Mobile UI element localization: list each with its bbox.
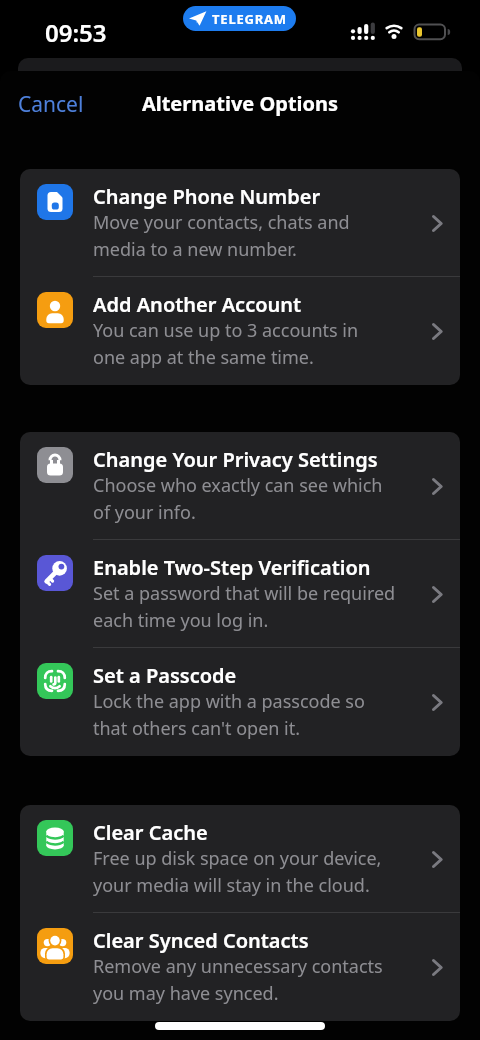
staticText: Add Another Account [93, 291, 302, 318]
button[interactable]: Enable Two-Step Verification [20, 540, 460, 648]
button[interactable]: Add Another Account [20, 277, 460, 385]
staticText: Set a Passcode [93, 662, 237, 689]
staticText: Alternative Options [0, 90, 480, 117]
button[interactable]: Change Your Privacy Settings [20, 432, 460, 540]
staticText: Change Your Privacy Settings [93, 446, 378, 473]
staticText: Set a password that will be required eac… [93, 581, 396, 632]
staticText: Free up disk space on your device, your … [93, 846, 382, 897]
staticText: Choose who exactly can see which of your… [93, 473, 383, 524]
staticText: Move your contacts, chats and media to a… [93, 210, 350, 261]
button[interactable]: Clear Cache [20, 805, 460, 913]
staticText: Remove any unnecessary contacts you may … [93, 954, 383, 1005]
staticText: 09:53 [45, 16, 107, 49]
staticText: Cancel [18, 90, 84, 119]
staticText: Enable Two-Step Verification [93, 554, 371, 581]
button[interactable]: Set a Passcode [20, 648, 460, 756]
button[interactable]: TELEGRAM [183, 6, 296, 31]
button[interactable]: Clear Synced Contacts [20, 913, 460, 1021]
staticText: Clear Synced Contacts [93, 927, 309, 954]
staticText: Change Phone Number [93, 183, 321, 210]
button[interactable]: Cancel [18, 90, 84, 119]
staticText: Lock the app with a passcode so that oth… [93, 689, 365, 740]
staticText: Clear Cache [93, 819, 208, 846]
staticText: You can use up to 3 accounts in one app … [93, 318, 359, 369]
staticText: TELEGRAM [212, 10, 287, 28]
button[interactable]: Change Phone Number [20, 169, 460, 277]
